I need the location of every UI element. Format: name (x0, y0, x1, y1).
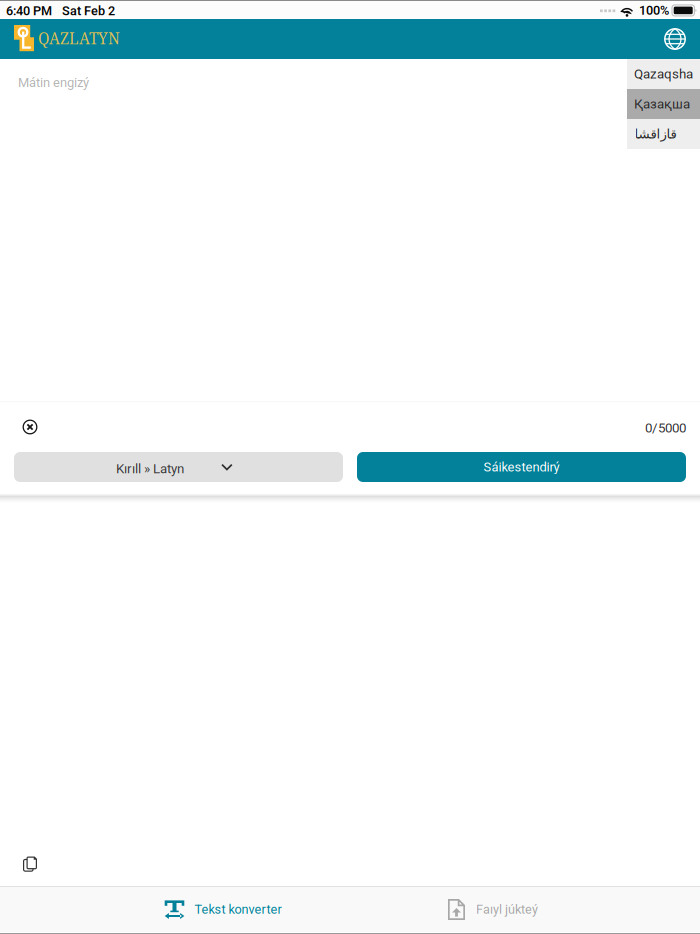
button[interactable]: Clear text (8, 410, 52, 444)
staticText: Қазақша (634, 96, 690, 112)
button[interactable]: Faıyl júkteý (358, 887, 628, 932)
button[interactable]: قازاقشا (627, 119, 700, 149)
button[interactable]: Қазақша (627, 89, 700, 119)
button[interactable]: Sáikestendirý (357, 452, 686, 482)
staticText: Sáikestendirý (483, 459, 559, 475)
staticText: 0/5000 (645, 420, 686, 436)
staticText: Qazaqsha (634, 66, 693, 82)
staticText: Tekst konverter (194, 902, 281, 917)
button[interactable]: Copy (8, 847, 52, 881)
staticText: Sat Feb 2 (62, 3, 115, 18)
button[interactable]: Qazaqsha (627, 59, 700, 89)
staticText: QAZLATYN (38, 28, 120, 49)
button[interactable]: Kırıll » Latyn (14, 452, 343, 482)
button[interactable]: Tekst konverter (88, 887, 358, 932)
staticText: 100% (639, 3, 669, 18)
staticText: Faıyl júkteý (476, 902, 538, 917)
staticText: Mátin engizý (18, 75, 89, 90)
staticText: 6:40 PM (6, 3, 52, 18)
button[interactable]: Language (653, 19, 697, 59)
staticText: Kırıll » Latyn (116, 461, 184, 477)
staticText: قازاقشا (634, 126, 676, 142)
